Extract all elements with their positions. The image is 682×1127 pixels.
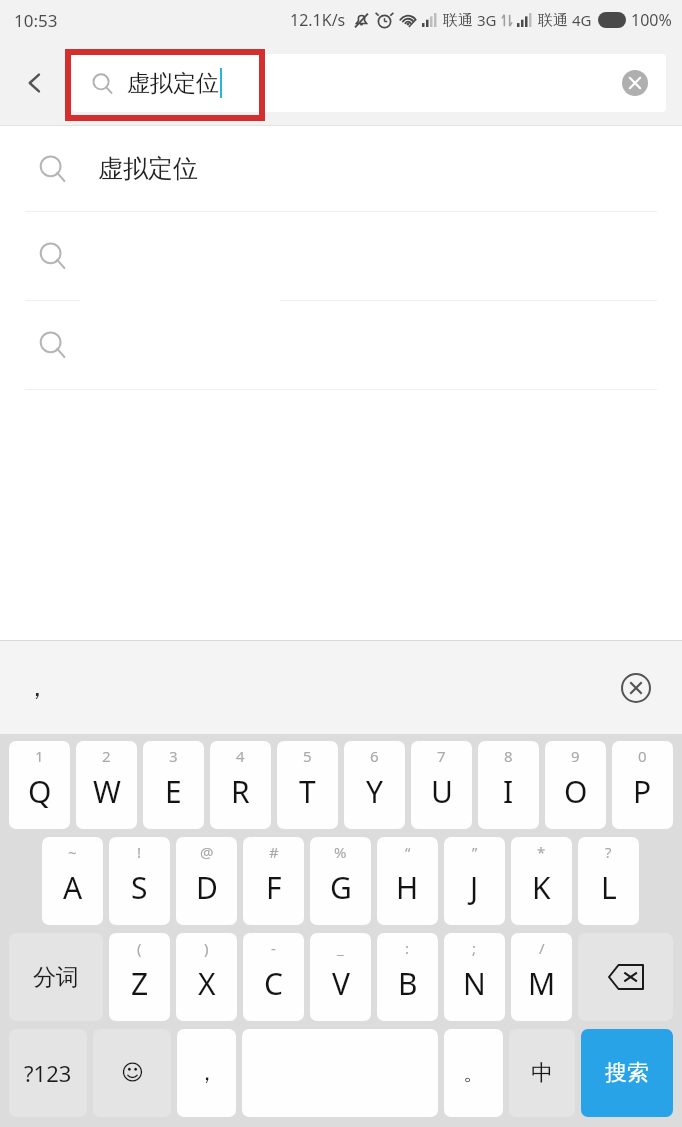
staticText: @ bbox=[200, 842, 214, 862]
staticText: 8 bbox=[504, 746, 513, 766]
button[interactable]: 5 bbox=[277, 741, 338, 829]
staticText: 联通 bbox=[538, 11, 568, 30]
button[interactable]: ! bbox=[109, 837, 170, 925]
staticText: ~ bbox=[68, 842, 77, 862]
button[interactable]: Search bbox=[581, 1029, 673, 1117]
staticText: 2 bbox=[102, 746, 111, 766]
staticText: L bbox=[601, 867, 617, 908]
button[interactable]: 1 bbox=[9, 741, 70, 829]
staticText: P bbox=[633, 771, 652, 812]
button[interactable]: 6 bbox=[344, 741, 405, 829]
button[interactable]: - bbox=[243, 933, 304, 1021]
button[interactable]: 虚拟定位 bbox=[0, 126, 682, 211]
staticText: O bbox=[564, 771, 588, 812]
button[interactable]: 3 bbox=[143, 741, 204, 829]
button[interactable]: ” bbox=[444, 837, 505, 925]
staticText: H bbox=[396, 867, 419, 908]
staticText: S bbox=[131, 867, 148, 908]
button[interactable]: ) bbox=[176, 933, 237, 1021]
staticText: 3 bbox=[169, 746, 178, 766]
staticText: C bbox=[264, 963, 283, 1004]
button[interactable] bbox=[0, 301, 682, 389]
staticText: B bbox=[398, 963, 418, 1004]
staticText: # bbox=[269, 842, 279, 862]
staticText: 分词 bbox=[33, 963, 79, 992]
staticText: N bbox=[463, 963, 486, 1004]
button[interactable]: _ bbox=[310, 933, 371, 1021]
staticText: I bbox=[503, 771, 514, 812]
button[interactable]: 2 bbox=[76, 741, 137, 829]
staticText: K bbox=[532, 867, 551, 908]
button[interactable]: * bbox=[511, 837, 572, 925]
button[interactable]: 虚拟定位 bbox=[72, 54, 666, 112]
button[interactable]: : bbox=[377, 933, 438, 1021]
staticText: 。 bbox=[463, 1059, 485, 1087]
staticText: G bbox=[330, 867, 352, 908]
button[interactable]: ~ bbox=[42, 837, 103, 925]
button[interactable]: ☺ bbox=[93, 1029, 171, 1117]
staticText: ; bbox=[472, 938, 477, 958]
staticText: F bbox=[266, 867, 282, 908]
staticText: 联通 bbox=[443, 11, 473, 30]
staticText: 7 bbox=[437, 746, 446, 766]
button[interactable]: 。 bbox=[444, 1029, 503, 1117]
button[interactable]: 0 bbox=[612, 741, 673, 829]
staticText: 3G bbox=[477, 10, 497, 30]
staticText: 0 bbox=[638, 746, 647, 766]
button[interactable]: Backspace bbox=[578, 933, 673, 1021]
staticText: V bbox=[332, 963, 350, 1004]
staticText: 虚拟定位 bbox=[127, 69, 219, 98]
staticText: 10:53 bbox=[14, 9, 58, 32]
staticText: J bbox=[470, 867, 479, 908]
staticText: % bbox=[334, 842, 347, 862]
staticText: 6 bbox=[370, 746, 379, 766]
staticText: 9 bbox=[571, 746, 580, 766]
staticText: ?123 bbox=[24, 1058, 72, 1088]
staticText: E bbox=[165, 771, 182, 812]
staticText: “ bbox=[405, 842, 411, 862]
staticText: * bbox=[537, 842, 546, 862]
button[interactable]: Back bbox=[10, 58, 60, 108]
button[interactable]: ? bbox=[578, 837, 639, 925]
button[interactable]: @ bbox=[176, 837, 237, 925]
button[interactable]: ， bbox=[177, 1029, 236, 1117]
staticText: / bbox=[539, 938, 545, 958]
button[interactable]: ; bbox=[444, 933, 505, 1021]
button[interactable]: # bbox=[243, 837, 304, 925]
staticText: _ bbox=[337, 938, 344, 958]
staticText: Q bbox=[28, 771, 52, 812]
staticText: U bbox=[431, 771, 453, 812]
staticText: 4G bbox=[572, 10, 592, 30]
staticText: 中 bbox=[531, 1059, 553, 1087]
button[interactable]: 8 bbox=[478, 741, 539, 829]
staticText: ( bbox=[137, 938, 142, 958]
staticText: 100% bbox=[631, 9, 672, 31]
staticText: 5 bbox=[303, 746, 312, 766]
button[interactable]: 7 bbox=[411, 741, 472, 829]
button[interactable]: Clear text bbox=[618, 66, 652, 100]
staticText: Z bbox=[131, 963, 149, 1004]
staticText: ☺ bbox=[121, 1060, 144, 1086]
button[interactable]: 4 bbox=[210, 741, 271, 829]
staticText: R bbox=[231, 771, 250, 812]
button[interactable]: “ bbox=[377, 837, 438, 925]
button[interactable]: / bbox=[511, 933, 572, 1021]
button[interactable]: 分词 bbox=[9, 933, 103, 1021]
button[interactable]: ?123 bbox=[9, 1029, 87, 1117]
button[interactable]: 中 bbox=[509, 1029, 575, 1117]
staticText: Y bbox=[366, 771, 383, 812]
staticText: : bbox=[405, 938, 410, 958]
button[interactable]: % bbox=[310, 837, 371, 925]
staticText: ) bbox=[204, 938, 209, 958]
staticText: T bbox=[299, 771, 316, 812]
staticText: D bbox=[196, 867, 218, 908]
button[interactable]: 9 bbox=[545, 741, 606, 829]
button[interactable]: Close keyboard bbox=[616, 668, 656, 708]
staticText: - bbox=[271, 938, 276, 958]
staticText: ” bbox=[472, 842, 478, 862]
staticText: M bbox=[528, 963, 556, 1004]
staticText: 12.1K/s bbox=[290, 9, 346, 31]
button[interactable] bbox=[0, 212, 682, 300]
button[interactable]: ( bbox=[109, 933, 170, 1021]
